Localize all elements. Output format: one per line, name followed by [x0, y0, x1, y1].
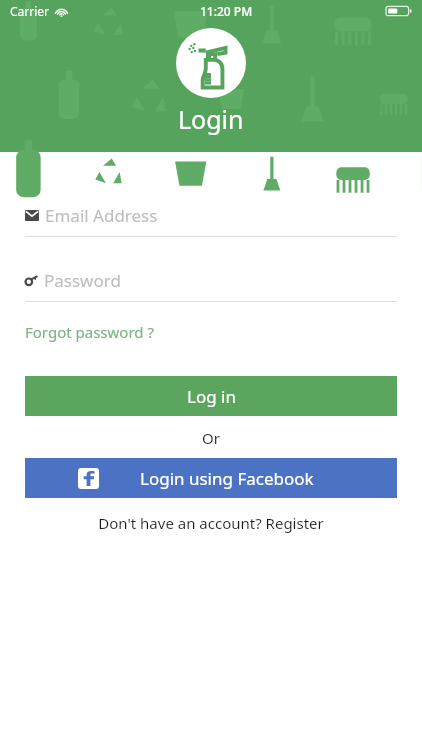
button[interactable]: Forgot password ?	[25, 322, 154, 342]
staticText: Don't have an account? Register	[98, 513, 324, 533]
button[interactable]: Password	[25, 269, 397, 302]
button[interactable]: Login using Facebook	[25, 458, 397, 498]
staticText: Carrier	[10, 3, 50, 19]
button[interactable]: Don't have an account? Register	[0, 513, 422, 533]
button[interactable]: Email Address	[25, 204, 397, 237]
staticText: 11:20 PM	[200, 3, 253, 19]
staticText: Email Address	[45, 204, 158, 227]
staticText: Or	[202, 428, 220, 448]
staticText: Login	[178, 102, 244, 136]
staticText: Password	[44, 269, 121, 292]
staticText: Log in	[187, 385, 236, 408]
staticText: Forgot password ?	[25, 322, 154, 342]
staticText: Login using Facebook	[140, 467, 314, 490]
button[interactable]: Log in	[25, 376, 397, 416]
